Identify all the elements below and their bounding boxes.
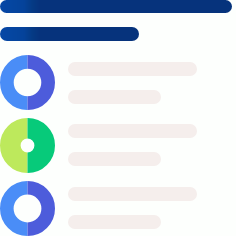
button[interactable]: Chart 2 (0, 118, 55, 173)
button[interactable]: Title placeholder (0, 0, 232, 13)
button[interactable]: Chart 3 (0, 181, 55, 236)
button[interactable]: Subtitle placeholder (0, 27, 139, 41)
button[interactable]: Chart 1 (0, 55, 55, 110)
